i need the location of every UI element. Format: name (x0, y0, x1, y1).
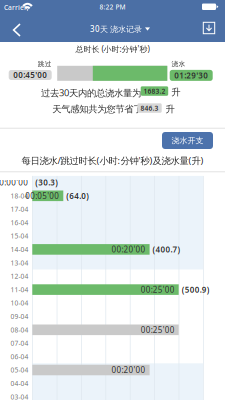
staticText: 浇水开支 (171, 136, 203, 145)
staticText: 00:45'00 (13, 70, 47, 80)
staticText: 01:29'30 (174, 70, 208, 81)
staticText: Carrier (4, 3, 27, 12)
staticText: 06-04 (10, 352, 28, 361)
staticText: 11-04 (10, 285, 28, 294)
staticText: 13-04 (10, 258, 28, 267)
staticText: 18-04 (10, 191, 28, 200)
staticText: 846.3 (141, 104, 159, 112)
staticText: 1683.2 (143, 87, 165, 95)
staticText: 12-04 (10, 272, 28, 281)
staticText: 07-04 (10, 339, 28, 348)
staticText: 09-04 (10, 312, 28, 321)
staticText: 00:05'00 (25, 190, 59, 201)
staticText: (400.7) (153, 244, 181, 255)
staticText: 08-04 (10, 325, 28, 334)
staticText: 05-04 (10, 366, 28, 374)
button[interactable]: Export (198, 17, 220, 39)
staticText: 17-04 (10, 205, 28, 214)
staticText: 04-04 (10, 379, 28, 388)
staticText: (30.3) (35, 177, 58, 188)
staticText: 00:00'00 (0, 177, 28, 188)
button[interactable]: Back (4, 17, 30, 43)
staticText: 00:25'00 (141, 284, 175, 295)
staticText: 15-04 (10, 232, 28, 240)
button[interactable]: 30天 浇水记录 (81, 21, 159, 37)
staticText: 16-04 (10, 218, 28, 227)
staticText: 10-04 (10, 299, 28, 307)
staticText: 每日浇水/跳过时长(小时:分钟'秒)及浇水量(升) (21, 154, 203, 167)
staticText: (500.9) (182, 284, 210, 295)
staticText: 30天 浇水记录 (90, 24, 142, 34)
staticText: 00:25'00 (141, 324, 175, 335)
staticText: 升 (165, 103, 174, 115)
staticText: 过去30天内的总浇水量为 (41, 86, 141, 99)
staticText: 浇水 (171, 60, 185, 68)
staticText: 00:20'00 (112, 365, 146, 375)
staticText: 跳过 (38, 60, 52, 68)
staticText: 00:20'00 (112, 244, 146, 255)
staticText: 8:22 PM (99, 2, 125, 11)
staticText: 14-04 (10, 245, 28, 254)
staticText: 总时长 (小时:分钟'秒) (75, 44, 149, 54)
staticText: 03-04 (10, 392, 28, 400)
staticText: 升 (171, 86, 180, 98)
button[interactable]: 浇水开支 (162, 132, 213, 149)
staticText: (64.0) (66, 190, 89, 201)
staticText: 天气感知共为您节省了 (52, 103, 142, 115)
